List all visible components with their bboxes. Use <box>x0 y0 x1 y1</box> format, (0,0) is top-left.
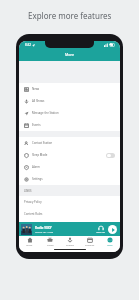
staticText: News <box>32 87 40 91</box>
staticText: Schedule <box>85 244 95 247</box>
button[interactable]: Events <box>19 119 120 131</box>
staticText: Events <box>32 123 41 127</box>
button[interactable]: Radio 90XY <box>19 222 120 236</box>
staticText: Alarm <box>32 165 40 169</box>
staticText: Podcast <box>66 244 75 247</box>
staticText: Shows <box>47 244 54 247</box>
staticText: Home <box>26 244 33 247</box>
staticText: Radio 90XY <box>35 226 52 230</box>
staticText: Contact Station <box>32 141 53 145</box>
staticText: Message the Station <box>32 111 59 115</box>
staticText: Settings <box>32 177 43 181</box>
button[interactable]: Sleep Mode <box>19 149 120 161</box>
staticText: All Shows <box>32 99 45 103</box>
button[interactable]: All Shows <box>19 95 120 107</box>
staticText: More <box>65 52 75 57</box>
button[interactable]: Home <box>19 236 40 247</box>
button[interactable]: Shows <box>40 236 60 247</box>
button[interactable]: Contact Station <box>19 137 120 149</box>
button[interactable]: Content Rules <box>19 208 120 220</box>
button[interactable]: Podcast <box>60 236 80 247</box>
button[interactable]: Play <box>108 225 117 234</box>
button[interactable]: Headphones <box>96 225 105 233</box>
button[interactable]: Privacy Policy <box>19 196 120 208</box>
button[interactable]: Alarm <box>19 161 120 173</box>
button[interactable]: Schedule <box>80 236 100 247</box>
staticText: Listen Live <box>96 231 105 233</box>
button[interactable]: More <box>100 236 120 247</box>
button[interactable]: Settings <box>19 173 120 185</box>
button[interactable]: News <box>19 83 120 95</box>
staticText: More <box>107 244 113 247</box>
staticText: Explore more features <box>28 10 112 21</box>
staticText: Sleep Mode <box>32 153 48 157</box>
staticText: Content Rules <box>24 212 43 216</box>
button[interactable]: Message the Station <box>19 107 120 119</box>
staticText: LINKS <box>24 189 32 193</box>
staticText: Privacy Policy <box>24 200 42 204</box>
staticText: 8:32 <box>25 43 31 47</box>
staticText: Sound Hit / Chill <box>35 230 54 233</box>
